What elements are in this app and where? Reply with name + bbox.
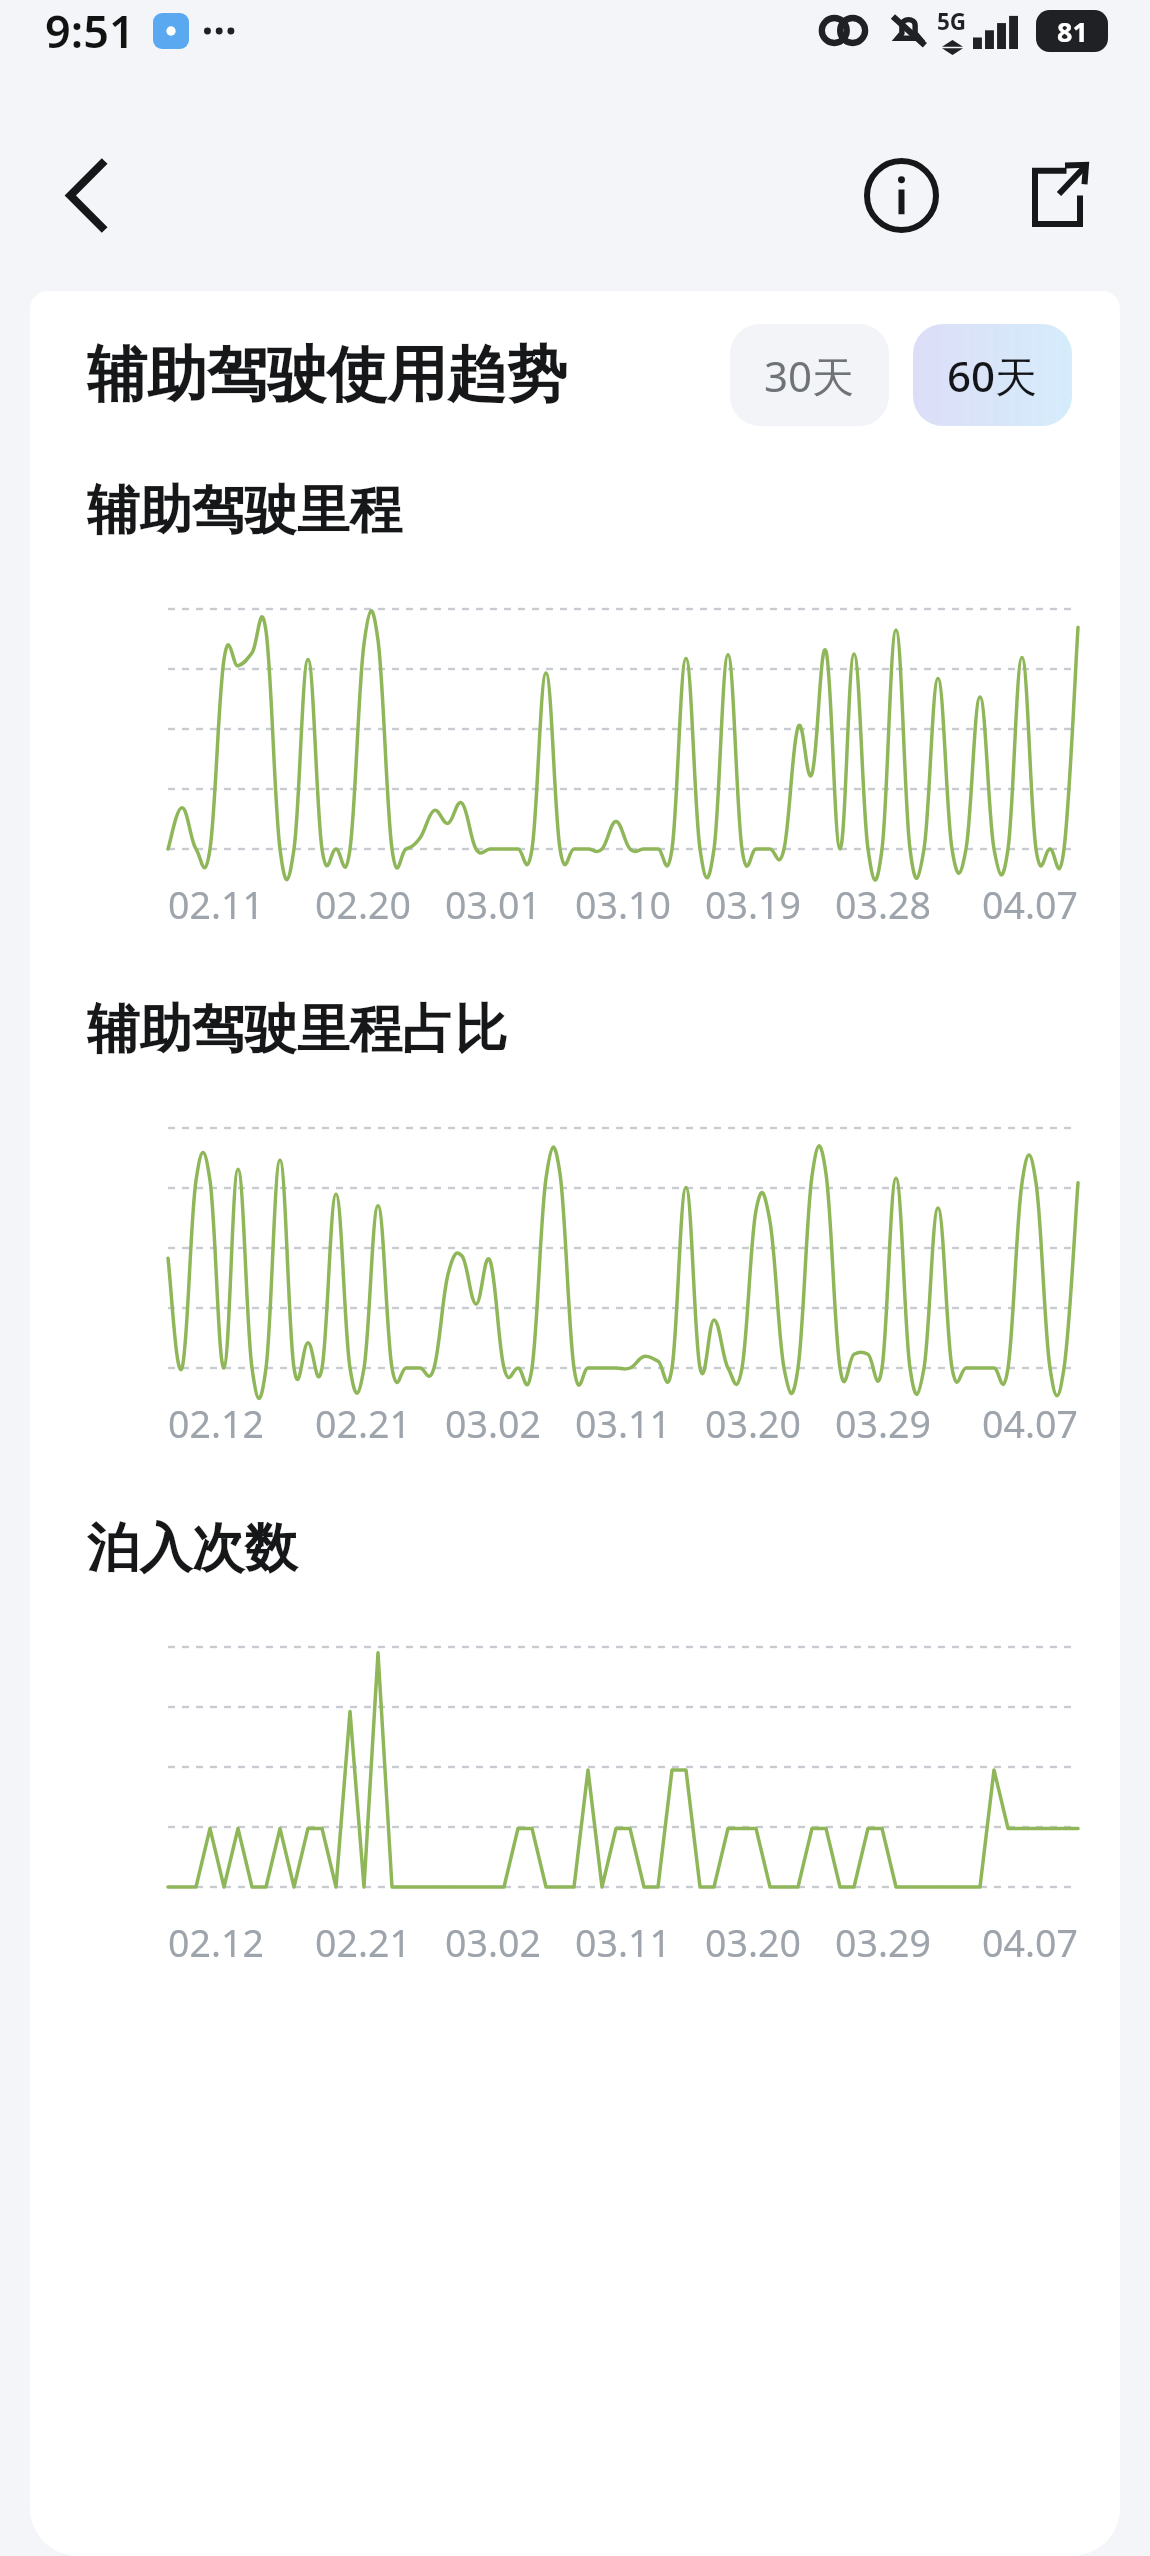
staticText: 04.07: [982, 879, 1078, 930]
button[interactable]: Info: [832, 126, 970, 264]
staticText: 5G: [937, 6, 967, 37]
button[interactable]: Share: [988, 126, 1126, 264]
staticText: 03.11: [575, 1398, 671, 1449]
staticText: 02.21: [315, 1398, 411, 1449]
staticText: 60天: [947, 347, 1038, 404]
button[interactable]: 60天: [913, 324, 1072, 426]
staticText: 03.02: [445, 1917, 541, 1968]
button[interactable]: 30天: [730, 324, 889, 426]
staticText: 03.20: [705, 1398, 801, 1449]
staticText: 81: [1057, 13, 1088, 50]
staticText: 03.28: [835, 879, 931, 930]
staticText: 02.21: [315, 1917, 411, 1968]
staticText: 03.29: [835, 1398, 931, 1449]
staticText: 30天: [764, 347, 855, 404]
staticText: 9:51: [45, 0, 135, 61]
staticText: 03.29: [835, 1917, 931, 1968]
staticText: 02.20: [315, 879, 411, 930]
staticText: 02.12: [168, 1917, 264, 1968]
button[interactable]: Back: [18, 126, 156, 264]
staticText: 03.02: [445, 1398, 541, 1449]
staticText: 03.19: [705, 879, 801, 930]
staticText: 辅助驾驶使用趋势: [87, 337, 567, 413]
staticText: 辅助驾驶里程: [87, 477, 402, 543]
staticText: 03.01: [445, 879, 541, 930]
staticText: 02.11: [168, 879, 264, 930]
staticText: 03.10: [575, 879, 671, 930]
staticText: 04.07: [982, 1917, 1078, 1968]
staticText: 02.12: [168, 1398, 264, 1449]
staticText: 03.11: [575, 1917, 671, 1968]
staticText: 04.07: [982, 1398, 1078, 1449]
staticText: 泊入次数: [87, 1515, 297, 1581]
staticText: 辅助驾驶里程占比: [87, 996, 507, 1062]
staticText: 03.20: [705, 1917, 801, 1968]
